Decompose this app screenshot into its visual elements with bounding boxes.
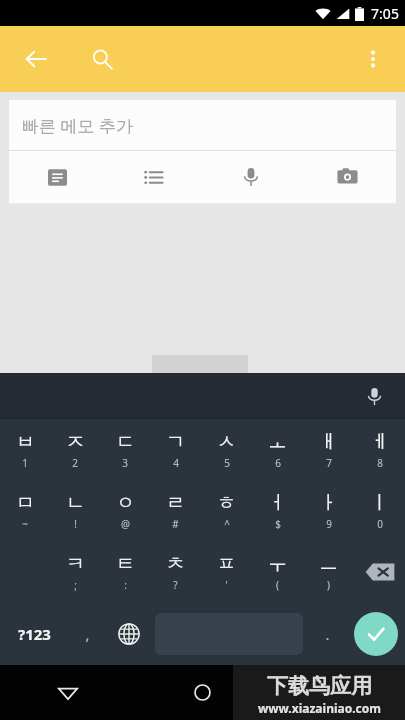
button[interactable]: Change language: [106, 603, 151, 665]
button[interactable]: New list: [105, 151, 202, 203]
staticText: ': [225, 578, 228, 592]
staticText: ㅜ: [268, 552, 287, 576]
staticText: ?123: [18, 624, 51, 644]
staticText: ㅗ: [268, 430, 287, 454]
button[interactable]: ㅗ: [252, 419, 303, 480]
button[interactable]: ㅇ: [100, 480, 150, 541]
button[interactable]: New note: [9, 151, 105, 203]
staticText: ㅅ: [217, 430, 236, 454]
button[interactable]: ㅡ: [303, 541, 354, 603]
staticText: ,: [85, 624, 90, 644]
button[interactable]: Photo note: [299, 151, 396, 203]
staticText: ㄴ: [66, 491, 85, 515]
button[interactable]: Search: [80, 37, 124, 81]
staticText: ㅎ: [217, 491, 236, 515]
button[interactable]: ㅐ: [303, 419, 354, 480]
button[interactable]: More options: [351, 37, 395, 81]
button[interactable]: ㅌ: [100, 541, 150, 603]
button[interactable]: ㅈ: [50, 419, 100, 480]
staticText: ;: [74, 578, 77, 592]
button[interactable]: ㄹ: [150, 480, 201, 541]
button[interactable]: ㅣ: [354, 480, 405, 541]
button[interactable]: ㅅ: [201, 419, 252, 480]
staticText: ㄷ: [116, 430, 135, 454]
staticText: ㅊ: [166, 552, 185, 576]
button[interactable]: Home: [135, 665, 270, 720]
button[interactable]: ㄷ: [100, 419, 150, 480]
button[interactable]: ㅊ: [150, 541, 201, 603]
button[interactable]: ㅁ: [0, 480, 50, 541]
staticText: 1: [22, 456, 28, 470]
staticText: ㅍ: [217, 552, 236, 576]
button[interactable]: Voice input: [357, 379, 391, 413]
staticText: ㅌ: [116, 552, 135, 576]
staticText: ㅏ: [319, 491, 338, 515]
staticText: ㅓ: [268, 491, 287, 515]
staticText: :: [124, 578, 127, 592]
button[interactable]: 빠른 메모 추가: [9, 100, 396, 204]
staticText: ㅋ: [66, 552, 85, 576]
button[interactable]: ㅔ: [354, 419, 405, 480]
staticText: 7:05: [371, 4, 399, 23]
staticText: ㄱ: [166, 430, 185, 454]
button[interactable]: ,: [68, 603, 106, 665]
staticText: ㅣ: [370, 491, 389, 515]
button[interactable]: ㅍ: [201, 541, 252, 603]
button[interactable]: Back: [14, 37, 58, 81]
staticText: 7: [326, 456, 332, 470]
button[interactable]: ㅜ: [252, 541, 303, 603]
button[interactable]: ㅏ: [303, 480, 354, 541]
staticText: 2: [72, 456, 78, 470]
button[interactable]: ㅋ: [50, 541, 100, 603]
staticText: 下载鸟应用: [267, 673, 372, 699]
staticText: 9: [326, 517, 332, 531]
button[interactable]: ?123: [0, 603, 68, 665]
staticText: 3: [122, 456, 128, 470]
staticText: ~: [22, 517, 28, 531]
button[interactable]: Enter: [354, 612, 398, 656]
button[interactable]: ㅂ: [0, 419, 50, 480]
button[interactable]: Hide keyboard: [0, 665, 135, 720]
button[interactable]: ㅎ: [201, 480, 252, 541]
staticText: ^: [224, 517, 230, 531]
staticText: #: [172, 517, 179, 531]
staticText: (: [276, 578, 279, 592]
button[interactable]: ㄱ: [150, 419, 201, 480]
button[interactable]: ㄴ: [50, 480, 100, 541]
staticText: !: [74, 517, 77, 531]
staticText: 4: [173, 456, 179, 470]
staticText: ㄹ: [166, 491, 185, 515]
staticText: ㅐ: [319, 430, 338, 454]
button[interactable]: ㅓ: [252, 480, 303, 541]
staticText: $: [275, 517, 281, 531]
staticText: 6: [275, 456, 281, 470]
staticText: @: [121, 517, 130, 531]
button[interactable]: .: [307, 603, 347, 665]
staticText: www.xiazainiao.com: [258, 700, 381, 716]
staticText: .: [325, 624, 330, 644]
staticText: ㅔ: [370, 430, 389, 454]
button[interactable]: Voice note: [202, 151, 299, 203]
staticText: 5: [224, 456, 230, 470]
staticText: ): [327, 578, 330, 592]
staticText: 빠른 메모 추가: [22, 114, 133, 137]
staticText: 0: [377, 517, 383, 531]
staticText: 8: [377, 456, 383, 470]
staticText: ㅁ: [16, 491, 35, 515]
button[interactable]: Delete: [354, 541, 405, 603]
staticText: ㅂ: [16, 430, 35, 454]
staticText: ㅈ: [66, 430, 85, 454]
staticText: ㅡ: [319, 552, 338, 576]
staticText: ?: [173, 578, 178, 592]
staticText: ㅇ: [116, 491, 135, 515]
